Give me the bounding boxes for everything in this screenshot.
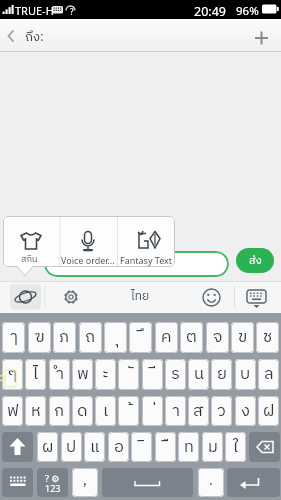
staticText: ภ (59, 324, 70, 351)
staticText: ไทย (131, 287, 150, 307)
button[interactable]: า (165, 396, 186, 426)
button[interactable]: ว (211, 396, 232, 426)
button[interactable]: จ (206, 322, 229, 353)
staticText: ิ (140, 434, 144, 461)
button[interactable] (227, 468, 280, 497)
button[interactable] (60, 216, 117, 267)
button[interactable] (197, 283, 227, 311)
staticText: า (172, 398, 180, 425)
button[interactable]: ั (118, 359, 139, 390)
button[interactable]: ค (155, 322, 178, 353)
button[interactable]: ? ⚙ 123 (37, 468, 68, 497)
staticText: ป (66, 434, 77, 461)
button[interactable] (8, 283, 43, 311)
button[interactable]: อ (108, 432, 129, 462)
button[interactable] (242, 283, 272, 311)
button[interactable]: บ (235, 359, 256, 390)
button[interactable]: ห (25, 396, 46, 426)
button[interactable]: ป (61, 432, 82, 462)
staticText: ? ⚙ 123 (45, 472, 61, 494)
button[interactable]: ิ (131, 432, 152, 462)
staticText: ี (151, 361, 155, 388)
button[interactable] (2, 468, 33, 497)
button[interactable]: น (188, 359, 209, 390)
staticText: ม (208, 434, 218, 461)
button[interactable]: ง (235, 396, 256, 426)
button[interactable] (2, 432, 33, 462)
staticText: ถึง: (25, 26, 44, 47)
staticText: 96% (236, 3, 259, 19)
staticText: ๅ (10, 324, 18, 351)
button[interactable]: ผ (37, 432, 58, 462)
staticText: Fantasy Text (120, 254, 173, 266)
button[interactable]: ื (155, 432, 176, 462)
button[interactable]: ใ (225, 432, 246, 462)
staticText: ั (127, 361, 131, 388)
button[interactable]: พ (72, 359, 93, 390)
staticText: น (194, 361, 204, 388)
button[interactable]: ล (258, 359, 279, 390)
staticText: . (209, 469, 213, 492)
staticText: ถ (85, 324, 96, 351)
staticText: ห (31, 398, 41, 425)
button[interactable]: ึ (129, 322, 152, 353)
button[interactable]: ย (211, 359, 232, 390)
button[interactable]: ไทย (120, 281, 160, 313)
button[interactable]: ช (256, 322, 279, 353)
button[interactable]: ภ (53, 322, 76, 353)
button[interactable]: ส่ง (236, 248, 274, 273)
staticText: ำ (56, 361, 64, 388)
staticText: เ (103, 398, 109, 425)
staticText: ล (264, 361, 274, 388)
staticText: ช (263, 324, 273, 351)
button[interactable]: ส (188, 396, 209, 426)
button[interactable]: , (72, 468, 98, 497)
button[interactable] (0, 19, 60, 52)
button[interactable]: ำ (49, 359, 70, 390)
staticText: บ (240, 361, 251, 388)
button[interactable]: ๅ (2, 322, 25, 353)
button[interactable]: ้ (118, 396, 139, 426)
button[interactable] (249, 432, 280, 462)
button[interactable]: ฝ (258, 396, 279, 426)
button[interactable]: ะ (95, 359, 116, 390)
button[interactable]: ๆ (2, 359, 23, 390)
button[interactable]: ไ (25, 359, 46, 390)
button[interactable]: ุ (104, 322, 127, 353)
staticText: อ (114, 434, 124, 461)
staticText: ง (241, 398, 250, 425)
button[interactable]: เ (95, 396, 116, 426)
button[interactable] (117, 216, 175, 267)
button[interactable]: ถ (79, 322, 102, 353)
staticText: ่ (151, 398, 155, 425)
button[interactable]: ฃ (28, 322, 51, 353)
staticText: ใ (233, 434, 239, 461)
staticText: ๆ (8, 361, 18, 388)
button[interactable] (245, 19, 281, 52)
button[interactable] (3, 216, 60, 267)
button[interactable]: . (198, 468, 224, 497)
staticText: ส่ง (249, 252, 262, 270)
button[interactable] (56, 283, 86, 311)
button[interactable]: แ (84, 432, 105, 462)
button[interactable]: ี (142, 359, 163, 390)
button[interactable]: ด (72, 396, 93, 426)
button[interactable] (44, 251, 229, 277)
button[interactable]: ต (180, 322, 203, 353)
button[interactable]: ก (49, 396, 70, 426)
button[interactable]: ฟ (2, 396, 23, 426)
button[interactable]: ่ (142, 396, 163, 426)
staticText: ฃ (35, 324, 45, 351)
button[interactable]: ร (165, 359, 186, 390)
button[interactable] (102, 468, 193, 497)
staticText: ฟ (7, 398, 19, 425)
staticText: ต (186, 324, 197, 351)
button[interactable]: ข (231, 322, 254, 353)
staticText: แ (90, 434, 100, 461)
staticText: , (83, 469, 87, 492)
staticText: สกิน (21, 252, 38, 267)
button[interactable]: ท (178, 432, 199, 462)
staticText: ื (164, 434, 168, 461)
button[interactable]: ม (202, 432, 223, 462)
staticText: ร (171, 361, 180, 388)
